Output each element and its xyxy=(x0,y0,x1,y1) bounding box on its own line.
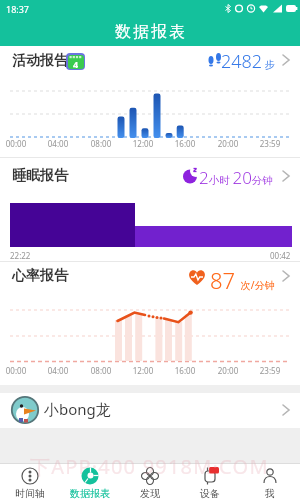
staticText: 08:00 xyxy=(87,138,115,149)
staticText: 我 xyxy=(265,487,275,500)
button[interactable] xyxy=(0,45,300,80)
staticText: 00:00 xyxy=(2,138,30,149)
staticText: 4 xyxy=(73,58,79,69)
staticText: 87 次/分钟 xyxy=(210,265,275,295)
button[interactable] xyxy=(0,393,300,428)
staticText: 23:59 xyxy=(256,365,284,376)
staticText: 数据报表 xyxy=(70,487,110,500)
staticText: 发现 xyxy=(140,487,160,500)
staticText: 12:00 xyxy=(129,365,157,376)
staticText: 2小时 20分钟 xyxy=(199,166,273,189)
staticText: 00:00 xyxy=(2,365,30,376)
button[interactable]: 数据报表 xyxy=(60,463,120,500)
staticText: 16:00 xyxy=(171,365,199,376)
staticText: 22:22 xyxy=(10,250,31,261)
staticText: 睡眠报告 xyxy=(12,167,68,185)
button[interactable] xyxy=(0,158,300,193)
staticText: 小bong龙 xyxy=(44,399,111,419)
button[interactable]: 我 xyxy=(240,463,300,500)
staticText: 20:00 xyxy=(214,365,242,376)
staticText: 00:42 xyxy=(270,250,291,261)
staticText: 04:00 xyxy=(44,138,72,149)
button[interactable]: 时间轴 xyxy=(0,463,60,500)
button[interactable] xyxy=(0,262,300,297)
staticText: 心率报告 xyxy=(12,267,68,285)
staticText: NEW xyxy=(219,464,231,471)
staticText: 活动报告 xyxy=(12,52,68,70)
staticText: 2482 步 xyxy=(221,49,275,74)
staticText: 20:00 xyxy=(214,138,242,149)
button[interactable]: 发现 xyxy=(120,463,180,500)
staticText: 16:00 xyxy=(171,138,199,149)
staticText: 下APP·400 9918M·COM xyxy=(30,453,269,480)
staticText: 23:59 xyxy=(256,138,284,149)
staticText: 数据报表 xyxy=(114,22,186,42)
staticText: 设备 xyxy=(200,487,220,500)
staticText: 12:00 xyxy=(129,138,157,149)
staticText: 08:00 xyxy=(87,365,115,376)
button[interactable]: 设备 xyxy=(180,463,240,500)
staticText: 时间轴 xyxy=(15,487,45,500)
staticText: 04:00 xyxy=(44,365,72,376)
staticText: 18:37 xyxy=(6,3,30,15)
